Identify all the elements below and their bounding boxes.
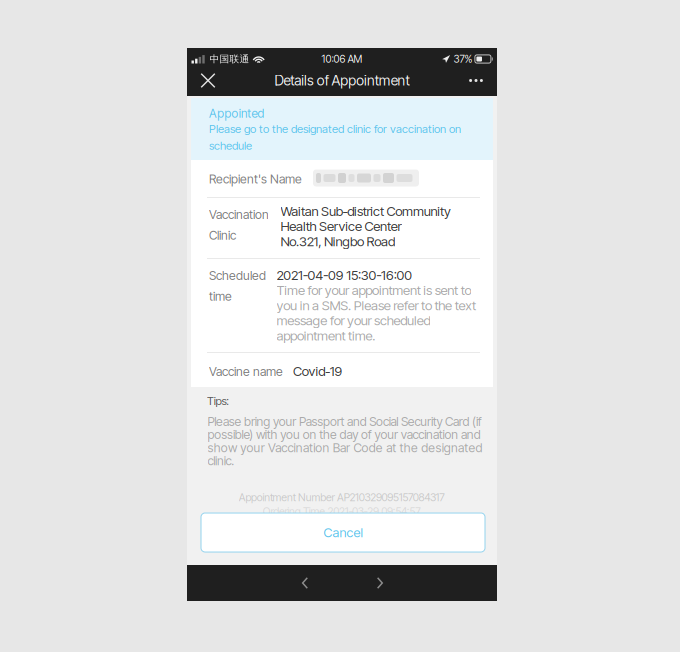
staticText: Scheduled	[209, 268, 266, 283]
staticText: time	[209, 289, 232, 304]
button[interactable]: More options	[459, 66, 493, 95]
button[interactable]: Forward	[363, 569, 397, 597]
staticText: Appointment Number AP210329095157084317	[239, 491, 445, 504]
staticText: Waitan Sub-district Community	[280, 203, 451, 219]
staticText: Cancel	[323, 525, 362, 540]
staticText: Recipient's Name	[209, 171, 302, 186]
staticText: Tips:	[207, 394, 229, 408]
button[interactable]: Back	[288, 569, 322, 597]
staticText: Please bring your Passport and Social Se…	[207, 414, 482, 429]
staticText: possible) with you on the day of your va…	[207, 427, 481, 442]
staticText: Health Service Center	[280, 218, 401, 234]
staticText: Clinic	[209, 228, 236, 243]
button[interactable]: Close	[191, 66, 225, 95]
staticText: clinic.	[207, 453, 234, 468]
staticText: 中国联通	[209, 53, 249, 65]
staticText: 2021-04-09 15:30-16:00	[276, 267, 412, 283]
staticText: Vaccination	[209, 207, 269, 222]
button[interactable]: Cancel	[201, 513, 485, 552]
staticText: show your Vaccination Bar Code at the de…	[207, 440, 483, 455]
staticText: 37%	[453, 53, 472, 65]
staticText: Appointed	[209, 106, 265, 120]
staticText: Please go to the designated clinic for v…	[209, 122, 461, 152]
staticText: Time for your appointment is sent to you…	[276, 282, 476, 344]
staticText: No.321, Ningbo Road	[280, 233, 395, 249]
staticText: Details of Appointment	[274, 72, 409, 89]
staticText: Ordering Time 2021-03-29 09:54:57	[263, 505, 421, 518]
staticText: Vaccine name	[209, 364, 283, 379]
staticText: Covid-19	[293, 363, 343, 379]
staticText: 10:06 AM	[321, 53, 362, 65]
